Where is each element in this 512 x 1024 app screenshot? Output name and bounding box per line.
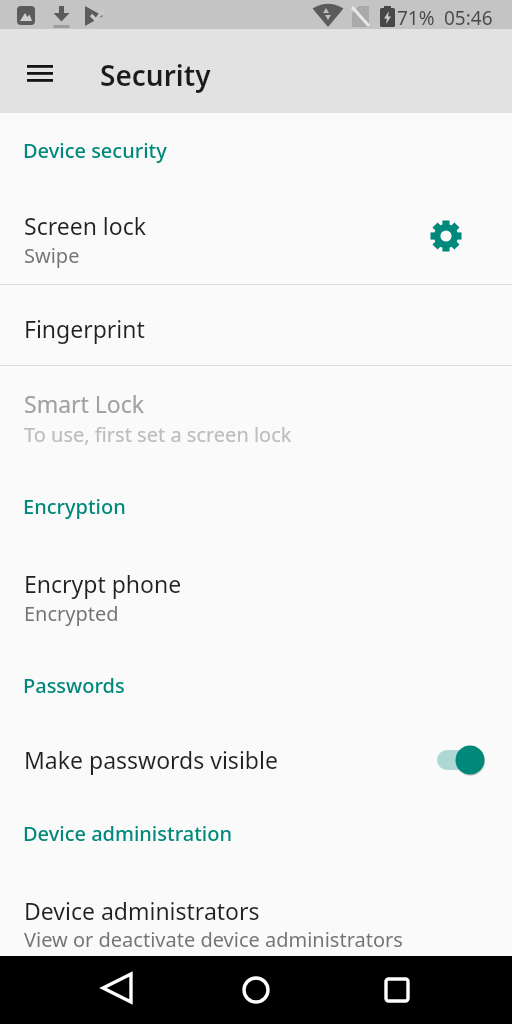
staticText: View or deactivate device administrators bbox=[24, 926, 403, 953]
button[interactable]: Make passwords visible bbox=[0, 726, 512, 796]
button[interactable]: Fingerprint bbox=[0, 285, 512, 365]
button[interactable]: Encrypt phone bbox=[0, 552, 512, 640]
staticText: Encryption bbox=[23, 493, 126, 520]
staticText: Security bbox=[100, 56, 211, 94]
button[interactable]: Screen lock bbox=[0, 196, 512, 284]
staticText: Device administration bbox=[23, 820, 232, 847]
staticText: Fingerprint bbox=[24, 313, 145, 344]
staticText: Device administrators bbox=[24, 895, 260, 926]
staticText: Swipe bbox=[24, 242, 80, 269]
staticText: Make passwords visible bbox=[24, 744, 278, 775]
staticText: Passwords bbox=[23, 672, 125, 699]
button[interactable] bbox=[367, 960, 427, 1020]
staticText: Screen lock bbox=[24, 210, 147, 241]
button[interactable]: Device administrators bbox=[0, 880, 512, 956]
staticText: Encrypt phone bbox=[24, 568, 182, 599]
button[interactable]: Smart Lock bbox=[0, 366, 512, 460]
staticText: 71% bbox=[397, 5, 435, 31]
button[interactable] bbox=[226, 960, 286, 1020]
button[interactable] bbox=[87, 960, 147, 1020]
button[interactable] bbox=[455, 745, 485, 775]
button[interactable] bbox=[16, 47, 64, 95]
staticText: Device security bbox=[23, 137, 167, 164]
staticText: Encrypted bbox=[24, 600, 119, 627]
button[interactable] bbox=[426, 220, 466, 260]
staticText: Smart Lock bbox=[24, 388, 145, 419]
staticText: To use, first set a screen lock bbox=[24, 421, 292, 448]
staticText: 05:46 bbox=[444, 5, 493, 31]
